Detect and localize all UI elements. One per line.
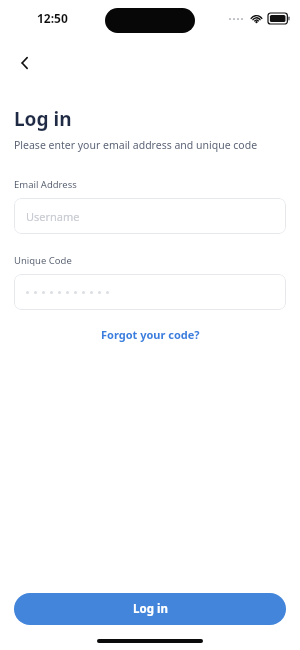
staticText: Forgot your code? bbox=[101, 327, 200, 342]
staticText: Username bbox=[26, 209, 80, 224]
button[interactable] bbox=[14, 274, 286, 310]
button[interactable]: Username bbox=[14, 198, 286, 234]
button[interactable]: Back bbox=[8, 46, 42, 80]
staticText: Email Address bbox=[14, 178, 77, 191]
staticText: Unique Code bbox=[14, 254, 72, 267]
staticText: Please enter your email address and uniq… bbox=[14, 138, 258, 152]
staticText: 12:50 bbox=[37, 10, 68, 26]
staticText: Log in bbox=[133, 601, 168, 617]
button[interactable]: Log in bbox=[14, 593, 286, 625]
staticText: Log in bbox=[14, 106, 72, 132]
button[interactable]: Forgot your code? bbox=[95, 324, 206, 345]
